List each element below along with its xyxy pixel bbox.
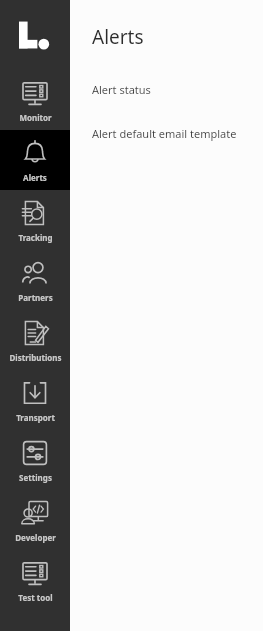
button[interactable]: Home logo — [0, 0, 70, 70]
staticText: Developer — [15, 532, 56, 543]
button[interactable]: Transport — [0, 370, 70, 430]
staticText: Partners — [18, 292, 53, 303]
staticText: Transport — [16, 412, 55, 423]
staticText: Test tool — [18, 592, 53, 603]
button[interactable]: Alerts — [0, 130, 70, 190]
button[interactable]: Monitor — [0, 70, 70, 130]
button[interactable]: Distributions — [0, 310, 70, 370]
staticText: Monitor — [19, 112, 52, 123]
staticText: Alert default email template — [92, 126, 237, 141]
button[interactable]: Settings — [0, 430, 70, 490]
button[interactable]: Alert default email template — [92, 122, 263, 144]
staticText: Alert status — [92, 82, 151, 97]
button[interactable]: Alert status — [92, 78, 263, 100]
button[interactable]: Test tool — [0, 550, 70, 610]
staticText: Settings — [19, 472, 52, 483]
button[interactable]: Tracking — [0, 190, 70, 250]
button[interactable]: Developer — [0, 490, 70, 550]
staticText: Alerts — [92, 24, 144, 50]
staticText: Distributions — [9, 352, 62, 363]
staticText: Alerts — [23, 172, 47, 183]
staticText: Tracking — [18, 232, 53, 243]
button[interactable]: Partners — [0, 250, 70, 310]
